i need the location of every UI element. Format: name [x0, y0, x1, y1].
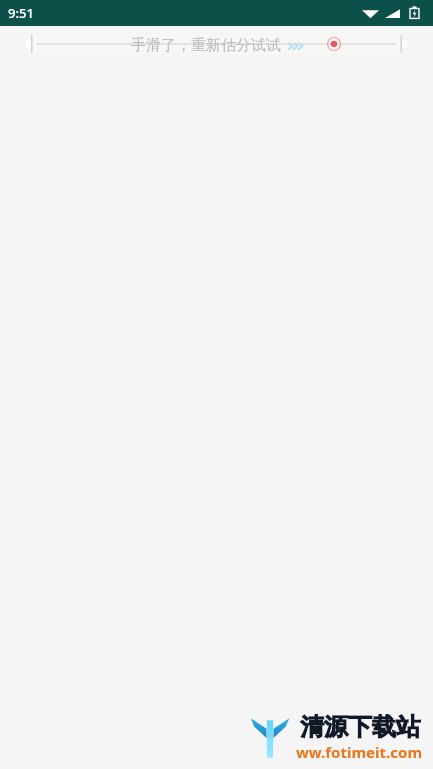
staticText: 清源下载站 [300, 712, 420, 742]
staticText: 9:51 [8, 4, 34, 22]
button[interactable]: 手滑了，重新估分试试 [107, 26, 327, 65]
staticText: 手滑了，重新估分试试 [131, 36, 281, 55]
staticText: ww.fotimeit.com [296, 742, 423, 762]
